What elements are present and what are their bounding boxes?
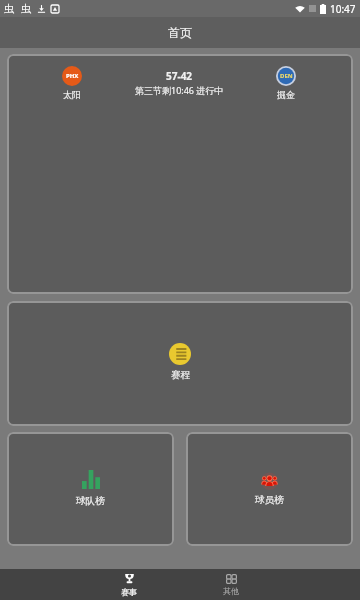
staticText: 赛事 bbox=[121, 587, 137, 597]
button[interactable]: PHX bbox=[7, 54, 353, 294]
staticText: 10:47 bbox=[330, 2, 356, 16]
staticText: 赛程 bbox=[171, 369, 190, 381]
button[interactable]: 球员榜 bbox=[186, 432, 353, 546]
button[interactable]: 赛程 bbox=[7, 301, 353, 426]
staticText: 球员榜 bbox=[255, 494, 284, 506]
staticText: 首页 bbox=[168, 25, 192, 40]
staticText: PHX bbox=[66, 72, 79, 80]
staticText: 第三节剩10:46 进行中 bbox=[135, 84, 224, 96]
button[interactable]: 球队榜 bbox=[7, 432, 174, 546]
staticText: 虫 bbox=[4, 2, 14, 15]
button[interactable]: 赛事 bbox=[90, 569, 168, 600]
staticText: 太阳 bbox=[63, 89, 81, 100]
staticText: 球队榜 bbox=[76, 495, 105, 507]
staticText: DEN bbox=[280, 72, 293, 80]
button[interactable]: 其他 bbox=[192, 569, 270, 600]
staticText: 其他 bbox=[223, 586, 239, 596]
staticText: 虫 bbox=[21, 2, 31, 15]
staticText: 57-42 bbox=[166, 69, 193, 83]
staticText: 掘金 bbox=[277, 89, 295, 100]
